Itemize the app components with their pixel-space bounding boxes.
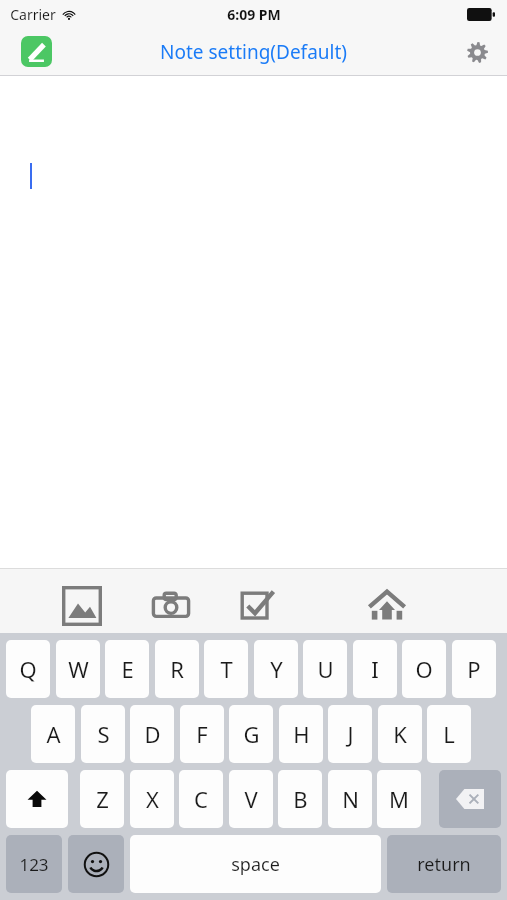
button[interactable]: W <box>56 640 100 698</box>
button[interactable]: K <box>378 705 422 763</box>
button[interactable]: Z <box>80 770 124 828</box>
staticText: C <box>194 784 208 814</box>
button[interactable]: N <box>328 770 372 828</box>
button[interactable]: P <box>452 640 496 698</box>
staticText: N <box>342 784 359 814</box>
button[interactable]: H <box>279 705 323 763</box>
button[interactable]: J <box>328 705 372 763</box>
staticText: Q <box>19 654 37 684</box>
button[interactable]: F <box>180 705 224 763</box>
staticText: Z <box>96 784 109 814</box>
button[interactable]: Shift <box>6 770 68 828</box>
staticText: M <box>389 784 409 814</box>
button[interactable]: M <box>377 770 421 828</box>
button[interactable]: Note setting(Default) <box>152 35 355 69</box>
button[interactable]: G <box>229 705 273 763</box>
button[interactable]: I <box>353 640 397 698</box>
staticText: Note setting(Default) <box>160 39 347 65</box>
staticText: L <box>443 719 455 749</box>
staticText: S <box>97 719 110 749</box>
staticText: U <box>317 654 334 684</box>
button[interactable]: Checklist <box>235 582 283 630</box>
staticText: Carrier <box>10 5 56 24</box>
staticText: X <box>146 784 159 814</box>
staticText: 6:09 PM <box>227 5 281 24</box>
staticText: F <box>196 719 208 749</box>
button[interactable]: X <box>130 770 174 828</box>
button[interactable]: C <box>179 770 223 828</box>
button[interactable]: space <box>130 835 381 893</box>
button[interactable]: Take photo <box>147 582 195 630</box>
staticText: R <box>170 654 184 684</box>
staticText: J <box>347 719 354 749</box>
button[interactable]: O <box>402 640 446 698</box>
button[interactable]: T <box>204 640 248 698</box>
staticText: P <box>467 654 481 684</box>
staticText: T <box>220 654 233 684</box>
button[interactable]: New note <box>21 36 52 67</box>
staticText: Y <box>270 654 283 684</box>
staticText: return <box>417 852 471 877</box>
button[interactable]: D <box>130 705 174 763</box>
staticText: E <box>121 654 134 684</box>
staticText: H <box>293 719 310 749</box>
button[interactable]: 123 <box>6 835 62 893</box>
staticText: space <box>231 852 280 877</box>
button[interactable]: Insert photo <box>58 582 106 630</box>
staticText: K <box>393 719 407 749</box>
button[interactable]: return <box>387 835 501 893</box>
staticText: D <box>144 719 161 749</box>
button[interactable]: Q <box>6 640 50 698</box>
button[interactable]: S <box>81 705 125 763</box>
button[interactable]: Emoji <box>68 835 124 893</box>
button[interactable]: E <box>105 640 149 698</box>
staticText: W <box>68 654 89 684</box>
button[interactable]: R <box>155 640 199 698</box>
button[interactable]: U <box>303 640 347 698</box>
staticText: G <box>243 719 260 749</box>
staticText: B <box>293 784 308 814</box>
button[interactable]: Home <box>363 582 411 630</box>
button[interactable]: V <box>229 770 273 828</box>
button[interactable]: Backspace <box>439 770 501 828</box>
button[interactable]: Settings <box>461 36 493 68</box>
staticText: 123 <box>19 853 49 876</box>
button[interactable]: L <box>427 705 471 763</box>
staticText: I <box>371 654 379 684</box>
button[interactable]: B <box>278 770 322 828</box>
button[interactable]: Y <box>254 640 298 698</box>
button[interactable]: A <box>31 705 75 763</box>
staticText: O <box>415 654 433 684</box>
staticText: V <box>244 784 258 814</box>
staticText: A <box>46 719 61 749</box>
